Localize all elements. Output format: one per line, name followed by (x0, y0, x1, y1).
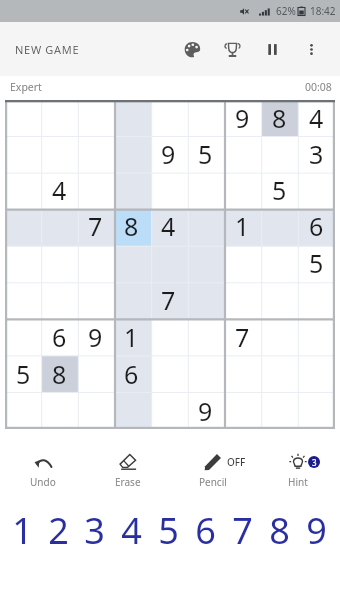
button[interactable]: 4 (298, 100, 335, 136)
button[interactable]: 9 (224, 100, 261, 136)
button[interactable]: 4 (41, 172, 77, 208)
button[interactable] (187, 318, 224, 355)
button[interactable] (298, 318, 335, 355)
button[interactable] (77, 172, 113, 208)
button[interactable] (5, 208, 41, 244)
button[interactable] (187, 100, 224, 136)
button[interactable]: 9 (298, 503, 335, 557)
button[interactable]: 6 (187, 503, 224, 557)
button[interactable] (5, 100, 41, 136)
button[interactable]: Undo (0, 451, 85, 491)
button[interactable]: OFF (170, 451, 255, 491)
button[interactable] (113, 136, 150, 172)
button[interactable] (261, 208, 298, 244)
button[interactable] (224, 392, 261, 429)
button[interactable]: 3 (298, 136, 335, 172)
button[interactable] (41, 392, 77, 429)
button[interactable] (224, 244, 261, 281)
button[interactable] (5, 244, 41, 281)
button[interactable] (150, 318, 187, 355)
button[interactable]: 5 (298, 244, 335, 281)
button[interactable] (113, 392, 150, 429)
button[interactable] (187, 172, 224, 208)
button[interactable]: 5 (150, 503, 187, 557)
button[interactable]: More options (292, 30, 330, 68)
button[interactable] (261, 392, 298, 429)
button[interactable] (150, 100, 187, 136)
button[interactable]: 3 (76, 503, 113, 557)
button[interactable]: 9 (187, 392, 224, 429)
button[interactable] (113, 281, 150, 318)
button[interactable] (5, 392, 41, 429)
button[interactable]: 8 (41, 355, 77, 392)
button[interactable] (41, 244, 77, 281)
button[interactable]: 9 (77, 318, 113, 355)
button[interactable] (224, 172, 261, 208)
button[interactable] (298, 172, 335, 208)
button[interactable] (298, 392, 335, 429)
button[interactable]: 1 (113, 318, 150, 355)
button[interactable] (224, 281, 261, 318)
button[interactable] (261, 355, 298, 392)
button[interactable] (261, 318, 298, 355)
button[interactable] (298, 281, 335, 318)
button[interactable]: 1 (4, 503, 40, 557)
button[interactable] (77, 281, 113, 318)
button[interactable]: Theme (172, 29, 212, 69)
button[interactable]: 8 (113, 208, 150, 244)
button[interactable]: 7 (224, 503, 261, 557)
button[interactable] (5, 318, 41, 355)
button[interactable] (187, 355, 224, 392)
button[interactable]: 1 (224, 208, 261, 244)
button[interactable] (224, 355, 261, 392)
button[interactable]: 4 (113, 503, 150, 557)
button[interactable] (224, 136, 261, 172)
button[interactable] (113, 172, 150, 208)
button[interactable] (261, 281, 298, 318)
button[interactable]: 6 (41, 318, 77, 355)
button[interactable]: 2 (40, 503, 76, 557)
button[interactable]: 6 (113, 355, 150, 392)
button[interactable] (150, 355, 187, 392)
button[interactable]: Pause (252, 29, 292, 69)
button[interactable] (113, 244, 150, 281)
button[interactable] (41, 100, 77, 136)
button[interactable] (41, 281, 77, 318)
button[interactable] (77, 355, 113, 392)
button[interactable] (77, 136, 113, 172)
staticText: 9 (306, 506, 327, 555)
button[interactable] (150, 172, 187, 208)
button[interactable]: NEW GAME (0, 34, 88, 65)
button[interactable]: 9 (150, 136, 187, 172)
button[interactable]: 4 (150, 208, 187, 244)
button[interactable]: 8 (261, 100, 298, 136)
button[interactable] (150, 392, 187, 429)
button[interactable]: 7 (77, 208, 113, 244)
button[interactable] (187, 208, 224, 244)
button[interactable] (77, 392, 113, 429)
button[interactable] (5, 281, 41, 318)
button[interactable]: 8 (261, 503, 298, 557)
button[interactable] (77, 100, 113, 136)
button[interactable]: 7 (224, 318, 261, 355)
button[interactable]: 5 (261, 172, 298, 208)
button[interactable] (5, 172, 41, 208)
button[interactable]: 6 (298, 208, 335, 244)
button[interactable]: 5 (5, 355, 41, 392)
button[interactable] (261, 136, 298, 172)
button[interactable]: 3 (255, 451, 340, 491)
button[interactable] (113, 100, 150, 136)
button[interactable] (5, 136, 41, 172)
button[interactable]: 7 (150, 281, 187, 318)
button[interactable] (41, 136, 77, 172)
button[interactable] (41, 208, 77, 244)
button[interactable]: Statistics (212, 29, 252, 69)
button[interactable] (261, 244, 298, 281)
button[interactable] (298, 355, 335, 392)
button[interactable]: Erase (85, 451, 170, 491)
button[interactable]: 5 (187, 136, 224, 172)
button[interactable] (77, 244, 113, 281)
